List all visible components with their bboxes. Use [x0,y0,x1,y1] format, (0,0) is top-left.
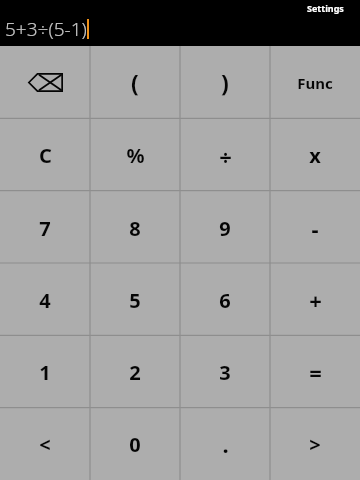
button[interactable]: 5 [90,264,180,336]
button[interactable]: 9 [180,192,270,264]
button[interactable]: 8 [90,192,180,264]
staticText: 5+3÷(5-1) [5,16,87,42]
button[interactable]: - [270,192,360,264]
staticText: x [309,142,321,169]
button[interactable]: % [90,119,180,192]
button[interactable]: + [270,264,360,336]
staticText: + [309,285,322,315]
button[interactable]: > [270,408,360,480]
staticText: Func [297,73,333,93]
button[interactable]: Func [270,46,360,119]
staticText: - [311,213,319,243]
staticText: . [222,429,229,459]
staticText: 6 [219,287,231,314]
staticText: < [39,431,51,458]
button[interactable]: C [0,119,90,192]
staticText: = [309,357,322,387]
button[interactable]: 4 [0,264,90,336]
staticText: 4 [39,287,51,314]
staticText: 5 [129,287,141,314]
button[interactable]: x [270,119,360,192]
button[interactable]: 1 [0,336,90,408]
staticText: 3 [219,359,231,386]
button[interactable]: 7 [0,192,90,264]
button[interactable]: 2 [90,336,180,408]
button[interactable]: < [0,408,90,480]
button[interactable]: 6 [180,264,270,336]
button[interactable]: 3 [180,336,270,408]
staticText: C [39,142,52,169]
button[interactable]: ( [90,46,180,119]
staticText: Settings [307,2,344,14]
staticText: 8 [129,215,141,242]
staticText: % [126,142,145,169]
button[interactable]: Backspace [0,46,90,119]
button[interactable]: ÷ [180,119,270,192]
staticText: 0 [129,431,141,458]
staticText: 9 [219,215,231,242]
staticText: > [309,431,321,458]
staticText: ÷ [219,141,232,171]
button[interactable]: . [180,408,270,480]
staticText: 1 [39,359,51,386]
button[interactable]: ) [180,46,270,119]
staticText: 2 [129,359,141,386]
staticText: 7 [39,215,51,242]
button[interactable]: = [270,336,360,408]
staticText: ( [131,67,139,98]
button[interactable]: 0 [90,408,180,480]
staticText: ) [221,67,229,98]
button[interactable]: Settings [307,2,344,14]
